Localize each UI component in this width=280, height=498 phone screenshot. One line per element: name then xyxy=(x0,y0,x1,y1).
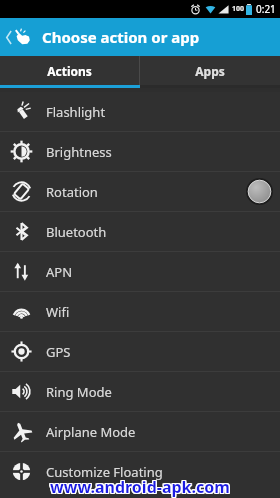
button[interactable]: Actions xyxy=(0,56,139,85)
staticText: 100 xyxy=(232,4,245,14)
staticText: APN xyxy=(46,263,73,281)
button[interactable]: Bluetooth xyxy=(0,212,280,251)
staticText: www.android-apk.com xyxy=(49,476,229,498)
staticText: GPS xyxy=(46,343,71,361)
staticText: www.android-apk.com xyxy=(51,476,231,498)
button[interactable]: Ring Mode xyxy=(0,372,280,411)
staticText: Actions xyxy=(47,63,92,79)
staticText: Apps xyxy=(195,63,225,79)
button[interactable]: Navigate up xyxy=(0,18,38,56)
staticText: Ring Mode xyxy=(46,383,112,401)
button[interactable]: Wifi xyxy=(0,292,280,331)
button[interactable]: GPS xyxy=(0,332,280,371)
button[interactable]: Customize Floating xyxy=(0,452,280,491)
staticText: Customize Floating xyxy=(46,463,163,481)
button[interactable]: Brightness xyxy=(0,132,280,171)
staticText: Brightness xyxy=(46,143,112,161)
button[interactable]: Apps xyxy=(140,56,280,85)
staticText: Wifi xyxy=(46,303,70,321)
staticText: 0:21 xyxy=(256,2,276,16)
button[interactable]: Rotation xyxy=(0,172,280,211)
staticText: Rotation xyxy=(46,183,98,201)
staticText: www.android-apk.com xyxy=(50,475,230,497)
button[interactable]: Flashlight xyxy=(0,92,280,131)
staticText: www.android-apk.com xyxy=(51,477,231,498)
staticText: www.android-apk.com xyxy=(50,476,230,498)
staticText: www.android-apk.com xyxy=(51,475,231,497)
staticText: www.android-apk.com xyxy=(49,477,229,498)
button[interactable]: Airplane Mode xyxy=(0,412,280,451)
staticText: Airplane Mode xyxy=(46,423,136,441)
staticText: Bluetooth xyxy=(46,223,107,241)
staticText: www.android-apk.com xyxy=(49,475,229,497)
button[interactable]: Floating overlay button xyxy=(246,178,273,205)
button[interactable]: APN xyxy=(0,252,280,291)
staticText: Choose action or app xyxy=(42,27,200,47)
staticText: www.android-apk.com xyxy=(50,477,230,498)
staticText: Flashlight xyxy=(46,103,106,121)
